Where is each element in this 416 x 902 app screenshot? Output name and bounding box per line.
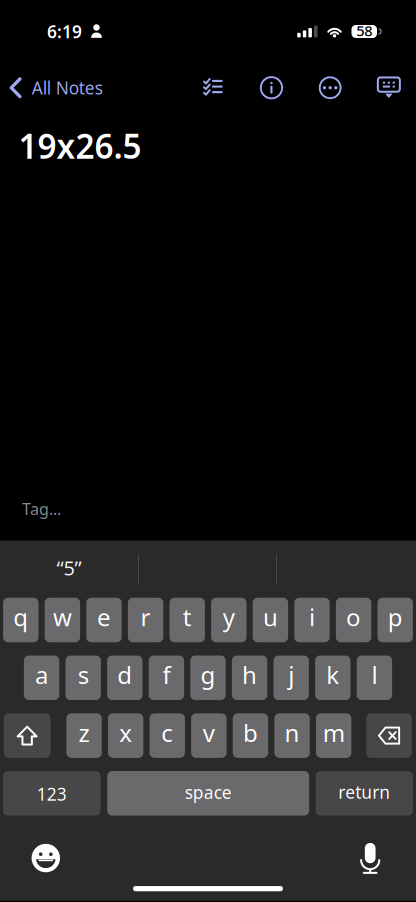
- staticText: g: [200, 659, 215, 691]
- staticText: x: [119, 717, 132, 749]
- button[interactable]: q: [3, 598, 38, 642]
- staticText: “5”: [56, 554, 81, 581]
- staticText: h: [242, 659, 257, 691]
- button[interactable]: v: [191, 713, 226, 758]
- staticText: m: [323, 717, 345, 749]
- button[interactable]: “5”: [0, 541, 138, 598]
- button[interactable]: o: [336, 598, 371, 642]
- button[interactable]: Emoji: [22, 834, 69, 882]
- button[interactable]: e: [86, 598, 122, 642]
- button[interactable]: return: [316, 771, 413, 815]
- button[interactable]: Dictate: [347, 834, 394, 882]
- staticText: return: [338, 780, 390, 803]
- staticText: i: [309, 601, 315, 633]
- staticText: r: [141, 601, 151, 633]
- button[interactable]: i: [294, 598, 330, 642]
- staticText: k: [326, 659, 339, 691]
- button[interactable]: t: [169, 598, 205, 642]
- staticText: q: [13, 601, 28, 633]
- button[interactable]: h: [232, 655, 267, 700]
- staticText: s: [78, 659, 89, 691]
- staticText: u: [263, 601, 278, 633]
- staticText: w: [53, 601, 72, 633]
- staticText: All Notes: [32, 76, 103, 99]
- staticText: y: [223, 601, 235, 633]
- staticText: 123: [37, 782, 67, 805]
- button[interactable]: space: [107, 771, 309, 815]
- button[interactable]: s: [65, 655, 101, 700]
- button[interactable]: l: [357, 655, 392, 700]
- staticText: t: [183, 601, 192, 633]
- staticText: f: [162, 659, 170, 691]
- staticText: b: [243, 717, 258, 749]
- button[interactable]: f: [149, 655, 184, 700]
- staticText: l: [371, 659, 377, 691]
- button[interactable]: Hide Keyboard: [359, 66, 416, 110]
- button[interactable]: r: [128, 598, 163, 642]
- button[interactable]: More: [301, 66, 359, 110]
- button[interactable]: Tag...: [22, 497, 61, 521]
- button[interactable]: c: [149, 713, 185, 758]
- button[interactable]: z: [66, 713, 102, 758]
- staticText: o: [346, 601, 361, 633]
- button[interactable]: a: [24, 655, 59, 700]
- button[interactable]: All Notes: [0, 66, 111, 110]
- staticText: d: [117, 659, 132, 691]
- button[interactable]: d: [107, 655, 142, 700]
- button[interactable]: w: [45, 598, 80, 642]
- button[interactable]: b: [233, 713, 268, 758]
- staticText: c: [161, 717, 173, 749]
- button[interactable]: Delete: [366, 713, 412, 758]
- button[interactable]: Note Details: [242, 66, 301, 110]
- staticText: 58: [356, 21, 372, 40]
- staticText: a: [35, 659, 48, 691]
- staticText: v: [203, 717, 215, 749]
- staticText: Tag...: [22, 498, 61, 519]
- button[interactable]: u: [253, 598, 288, 642]
- staticText: space: [185, 781, 232, 804]
- button[interactable]: k: [315, 655, 350, 700]
- button[interactable]: y: [211, 598, 246, 642]
- staticText: p: [388, 601, 403, 633]
- button[interactable]: g: [190, 655, 226, 700]
- button[interactable]: n: [274, 713, 310, 758]
- staticText: z: [78, 717, 89, 749]
- staticText: j: [288, 659, 294, 691]
- button[interactable]: m: [316, 713, 351, 758]
- staticText: n: [284, 717, 299, 749]
- button[interactable]: Shift: [4, 713, 50, 758]
- button[interactable]: x: [108, 713, 143, 758]
- button[interactable]: 123: [3, 771, 100, 815]
- staticText: 6:19: [47, 20, 82, 43]
- button[interactable]: Checklist: [183, 66, 242, 110]
- button[interactable]: j: [273, 655, 309, 700]
- staticText: 19x26.5: [18, 124, 141, 168]
- staticText: e: [97, 601, 111, 633]
- button[interactable]: p: [377, 598, 413, 642]
